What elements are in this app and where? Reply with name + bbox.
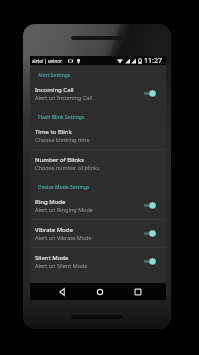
staticText: airtel | uninor [32, 58, 62, 64]
button[interactable]: Incoming Call [30, 80, 166, 107]
button[interactable]: Toggle Incoming Call [143, 87, 159, 100]
staticText: Alert on Incoming Call [35, 94, 93, 101]
staticText: Flash Blink Settings [38, 114, 85, 121]
button[interactable]: Home [81, 283, 119, 300]
staticText: Ring Mode [35, 198, 66, 206]
staticText: Choose number of blinks [35, 164, 100, 171]
button[interactable]: Toggle Silent Mode [143, 255, 159, 268]
staticText: Alert on Silent Mode [35, 262, 88, 269]
button[interactable]: Ring Mode [30, 192, 166, 219]
button[interactable]: Vibrate Mode [30, 220, 166, 247]
staticText: 11:27 [144, 56, 162, 65]
button[interactable]: Silent Mode [30, 248, 166, 275]
staticText: Silent Mode [35, 254, 69, 262]
staticText: Alert on Vibrate Mode [35, 234, 92, 241]
button[interactable]: Recent apps [119, 283, 157, 300]
staticText: Time to Blink [35, 128, 72, 136]
button[interactable]: Toggle Vibrate Mode [143, 227, 159, 240]
staticText: Alert on Ringing Mode [35, 206, 93, 213]
button[interactable]: Time to Blink [30, 122, 166, 149]
staticText: Incoming Call [35, 86, 74, 94]
staticText: Choose blinking time [35, 136, 90, 143]
staticText: Number of Blinks [35, 156, 85, 164]
button[interactable]: Toggle Ring Mode [143, 199, 159, 212]
button[interactable]: Back [43, 283, 81, 300]
staticText: Device Mode Settings [38, 184, 90, 191]
staticText: Alert Settings [38, 72, 71, 79]
button[interactable]: Number of Blinks [30, 150, 166, 177]
staticText: Vibrate Mode [35, 226, 73, 234]
